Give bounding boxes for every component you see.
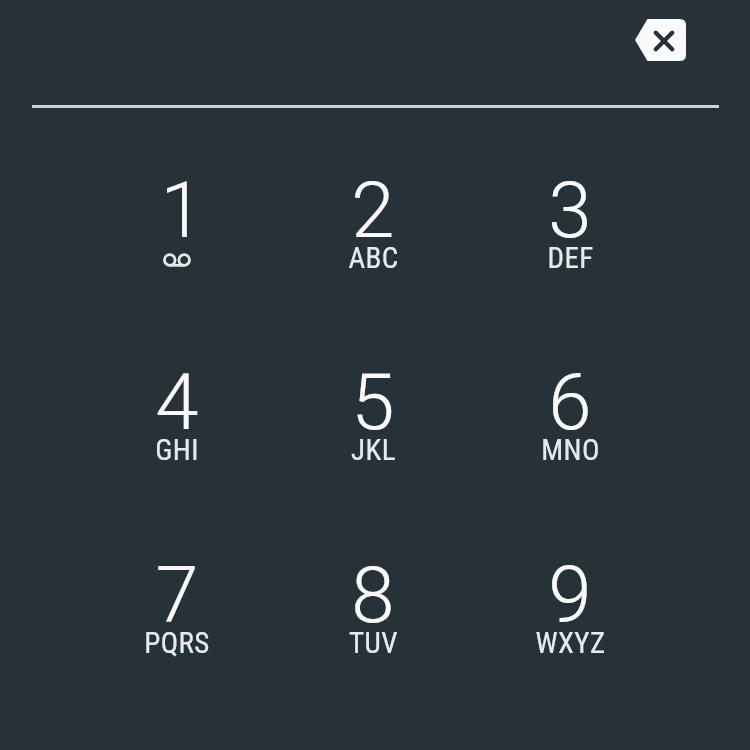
button[interactable]: 4 (81, 339, 273, 497)
staticText: 8 (351, 550, 395, 641)
staticText: DEF (547, 241, 594, 275)
staticText: 2 (351, 165, 395, 256)
staticText: PQRS (144, 626, 210, 660)
button[interactable]: 9 (474, 532, 666, 690)
button[interactable]: Backspace (622, 7, 698, 73)
staticText: TUV (349, 626, 398, 660)
staticText: GHI (155, 433, 199, 467)
staticText: MNO (541, 433, 600, 467)
button[interactable]: 7 (81, 532, 273, 690)
staticText: 5 (351, 357, 395, 448)
button[interactable]: 1 (81, 147, 273, 305)
button[interactable]: 2 (277, 147, 469, 305)
staticText: ABC (348, 241, 399, 275)
staticText: 4 (155, 357, 199, 448)
staticText: JKL (351, 433, 396, 467)
button[interactable]: 3 (474, 147, 666, 305)
staticText: 3 (548, 165, 592, 256)
button[interactable]: 8 (277, 532, 469, 690)
button[interactable]: 6 (474, 339, 666, 497)
staticText: 9 (548, 550, 592, 641)
button[interactable]: 5 (277, 339, 469, 497)
staticText: 1 (160, 165, 204, 256)
staticText: 6 (548, 357, 592, 448)
staticText: WXYZ (535, 626, 606, 660)
staticText: 7 (155, 550, 199, 641)
